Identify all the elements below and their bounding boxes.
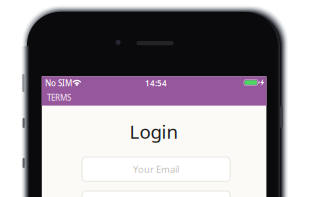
staticText: Your Email [133, 163, 179, 175]
staticText: TERMS [47, 92, 71, 103]
staticText: No SIM [45, 78, 72, 88]
staticText: Login [130, 119, 179, 144]
button[interactable]: TERMS [0, 0, 48, 17]
staticText: 14:54 [145, 78, 167, 88]
